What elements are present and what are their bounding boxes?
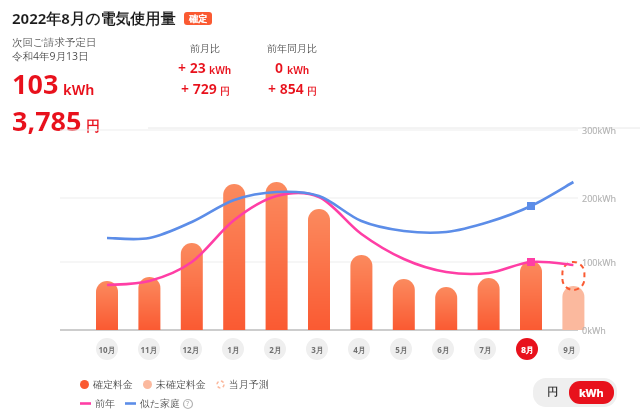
staticText: kWh [209,63,232,77]
staticText: kWh [63,80,95,99]
staticText: 確定料金 [93,378,133,391]
button[interactable]: 1月 [222,338,244,360]
staticText: 3,785 [12,102,82,139]
button[interactable]: 円 [536,381,569,403]
staticText: 7月 [479,344,492,355]
button[interactable]: 7月 [474,338,496,360]
staticText: 確定 [189,13,207,24]
button[interactable]: 12月 [180,338,202,360]
staticText: 当月予測 [229,378,269,391]
staticText: 前月比 [190,42,220,55]
staticText: 2月 [269,344,282,355]
staticText: 似た家庭 [140,397,181,410]
staticText: kWh [579,385,604,400]
button[interactable]: 10月 [96,338,118,360]
button[interactable]: 5月 [390,338,412,360]
staticText: 2022年8月の電気使用量 [12,8,176,28]
staticText: ? [186,399,190,409]
staticText: 4月 [353,344,366,355]
button[interactable]: 4月 [348,338,370,360]
staticText: 円 [307,85,317,98]
staticText: 円 [86,118,100,136]
button[interactable]: 9月 [558,338,580,360]
button[interactable]: 3月 [306,338,328,360]
staticText: 令和4年9月13日 [12,49,89,63]
staticText: 円 [547,385,558,399]
button[interactable]: 確定 [184,12,212,25]
staticText: 次回ご請求予定日 [12,36,97,49]
staticText: 0 [275,58,284,77]
button[interactable]: 6月 [432,338,454,360]
staticText: 100kWh [582,256,617,268]
staticText: 9月 [563,344,576,355]
staticText: 103 [12,65,59,102]
staticText: 0kWh [582,324,606,336]
button[interactable]: 11月 [138,338,160,360]
staticText: 5月 [395,344,408,355]
staticText: 前年同月比 [267,42,317,55]
staticText: 11月 [140,344,158,355]
staticText: 12月 [182,344,200,355]
staticText: 6月 [437,344,450,355]
button[interactable]: Help about similar households [183,399,193,409]
staticText: 200kWh [582,192,617,204]
staticText: 1月 [227,344,240,355]
button[interactable]: 2月 [264,338,286,360]
staticText: kWh [287,63,310,77]
staticText: 10月 [98,344,116,355]
staticText: 3月 [311,344,324,355]
button[interactable]: 前年同月比 [252,42,332,98]
button[interactable]: 前月比 [168,42,242,98]
staticText: 8月 [521,344,534,355]
staticText: + 729 [181,79,217,98]
button[interactable]: 8月 [516,338,538,360]
button[interactable]: kWh [569,381,614,404]
staticText: 円 [220,85,230,98]
staticText: 300kWh [582,124,617,136]
staticText: 未確定料金 [156,378,206,391]
staticText: 前年 [95,397,115,410]
staticText: + 23 [178,58,206,77]
staticText: + 854 [268,79,304,98]
